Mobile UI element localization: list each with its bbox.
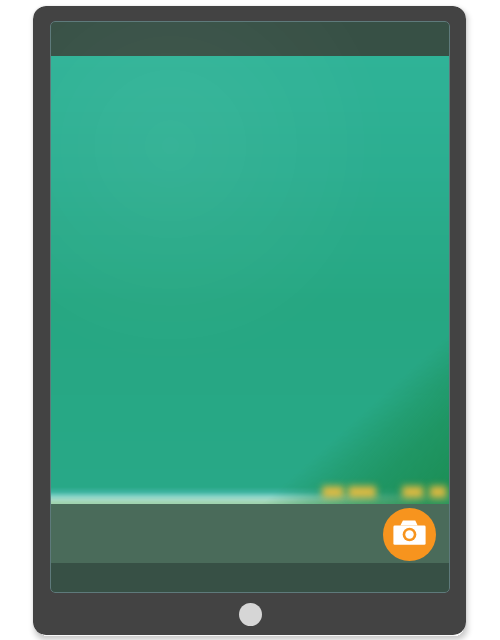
button[interactable]: Home <box>239 603 262 626</box>
button[interactable]: Take photo <box>383 508 436 561</box>
